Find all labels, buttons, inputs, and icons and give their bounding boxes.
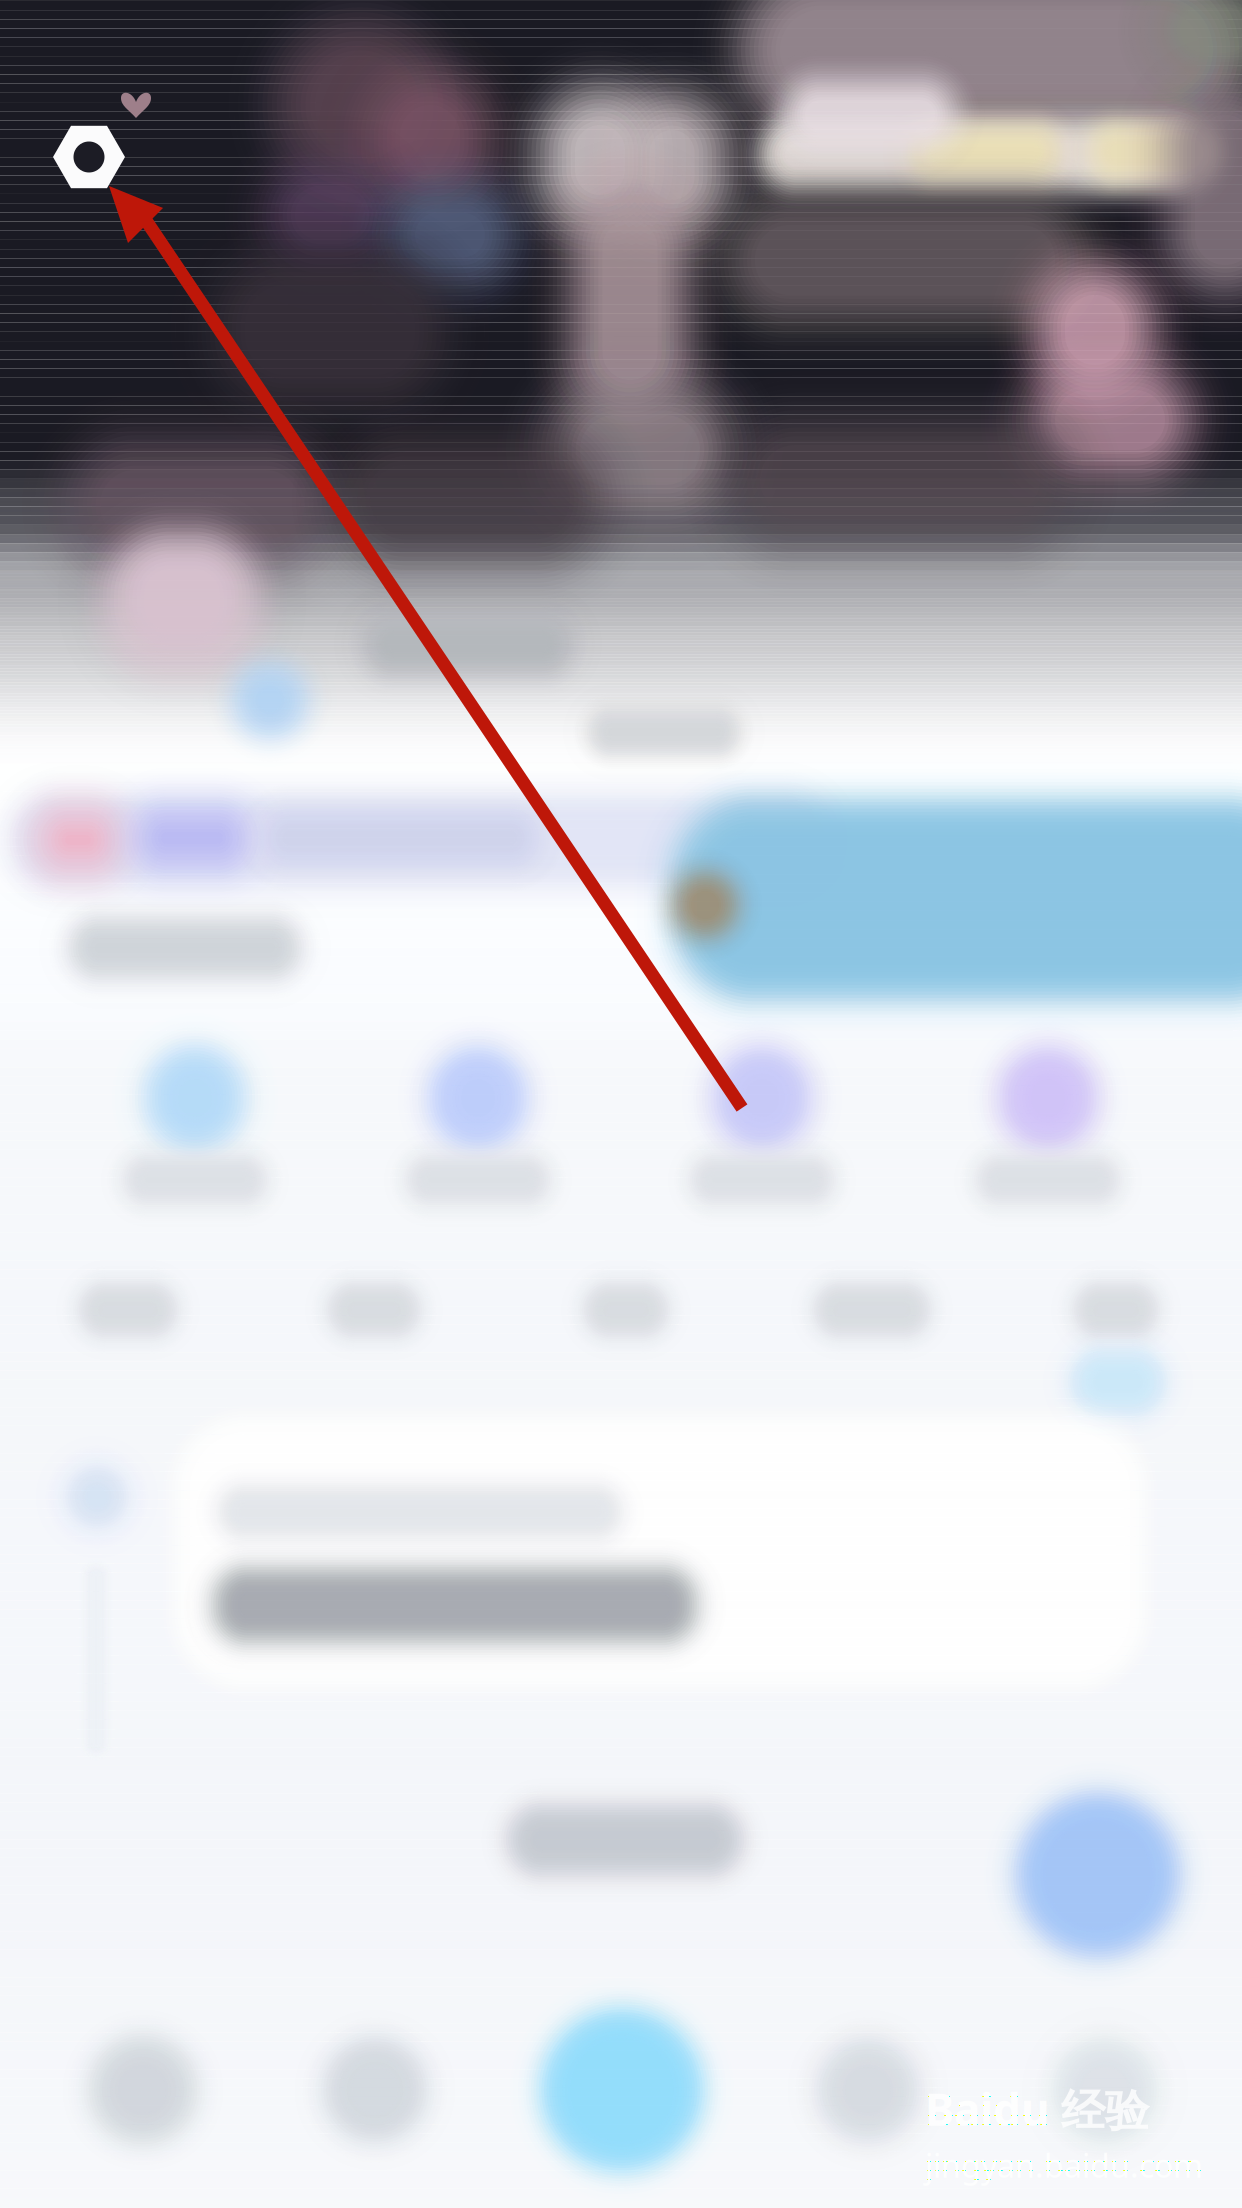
button[interactable]: Tag 5 xyxy=(0,0,1242,2208)
button[interactable]: Tag 2 xyxy=(0,0,1242,2208)
button[interactable]: Discover xyxy=(0,0,1242,2208)
staticText: jingyan.baidu.com xyxy=(925,2144,1203,2187)
button[interactable]: Create xyxy=(0,0,1242,2208)
staticText: Baidu 经验 xyxy=(925,2079,1149,2138)
button[interactable]: Tag 4 xyxy=(0,0,1242,2208)
button[interactable]: Profile xyxy=(0,0,1242,2208)
button[interactable]: Shortcut 2 xyxy=(0,0,1242,2208)
button[interactable]: Home xyxy=(0,0,1242,2208)
button[interactable]: Tag 3 xyxy=(0,0,1242,2208)
button[interactable]: Shortcut 3 xyxy=(0,0,1242,2208)
button[interactable]: Tag 1 xyxy=(0,0,1242,2208)
button[interactable]: Shortcut 4 xyxy=(0,0,1242,2208)
button[interactable]: Notifications xyxy=(0,0,1242,2208)
button[interactable]: Shortcut 1 xyxy=(0,0,1242,2208)
